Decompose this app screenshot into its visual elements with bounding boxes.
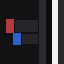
button[interactable]: Alerts xyxy=(0,19,39,33)
button[interactable]: Sync xyxy=(0,33,39,45)
